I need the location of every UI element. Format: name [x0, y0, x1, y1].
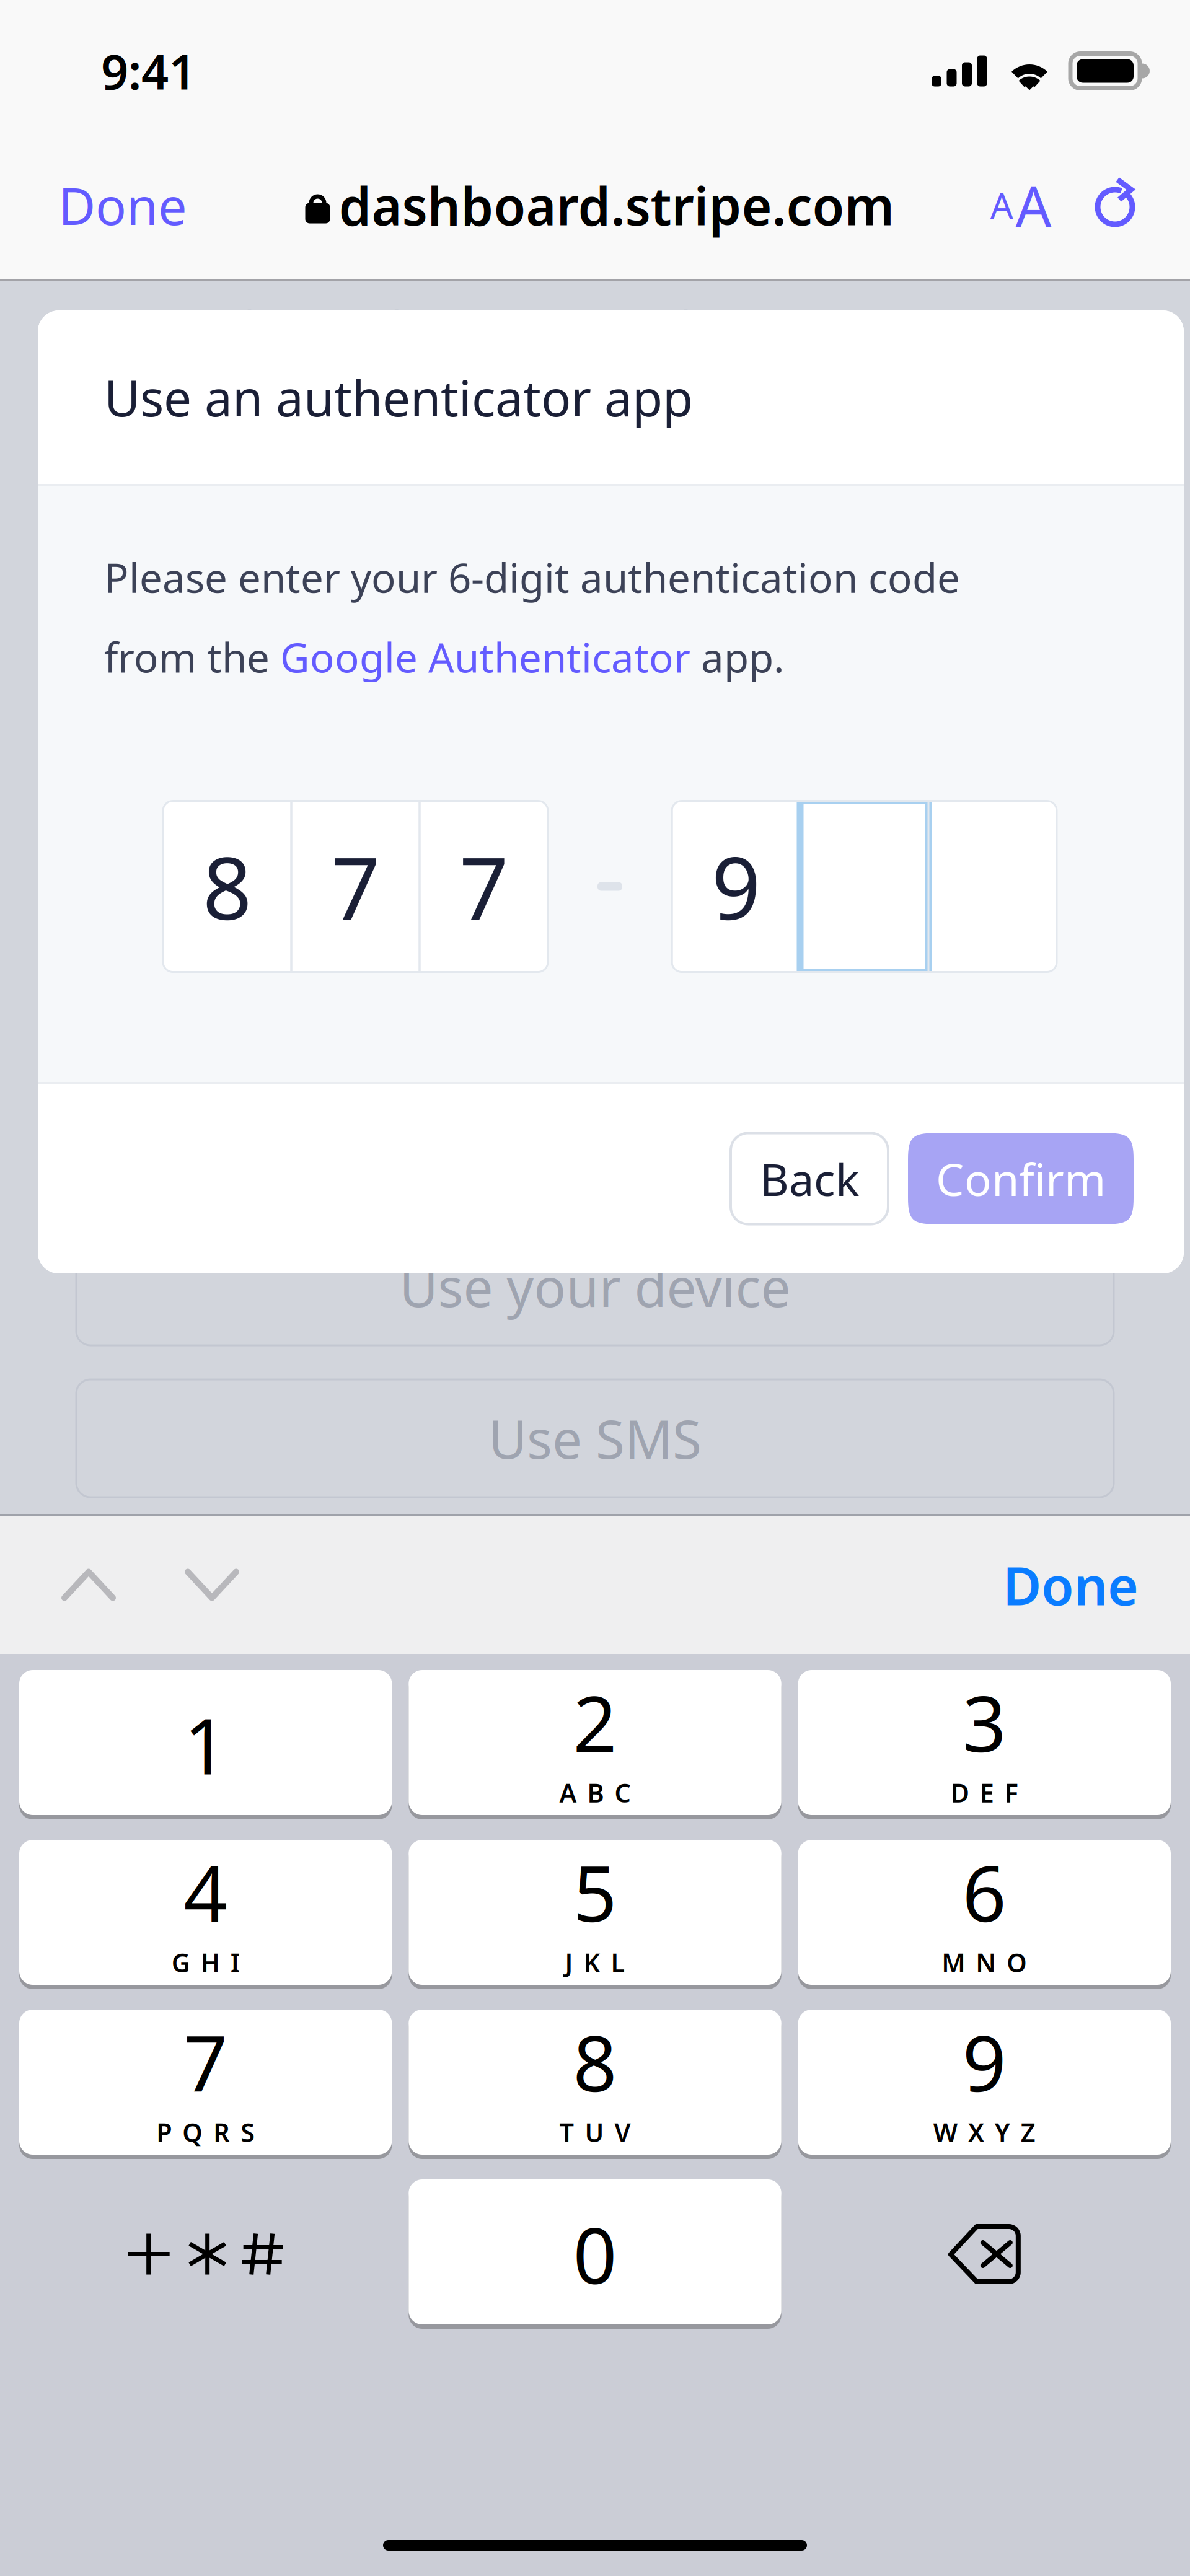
button[interactable]: Done — [50, 162, 196, 248]
staticText: Confirm — [936, 1149, 1106, 1208]
button[interactable]: Text size — [982, 168, 1060, 242]
staticText: J K L — [565, 1945, 625, 1979]
staticText: 9 — [962, 2011, 1006, 2113]
button[interactable]: 7 — [19, 2010, 392, 2159]
staticText: Use your device — [399, 1251, 791, 1322]
staticText: ith your device or an authenticator app. — [219, 298, 971, 352]
button[interactable]: Symbols — [19, 2179, 392, 2329]
button[interactable]: 4 — [19, 1840, 392, 1989]
staticText: A B C — [559, 1776, 631, 1810]
staticText: M N O — [942, 1945, 1027, 1979]
staticText: Done — [58, 171, 187, 239]
button[interactable]: Confirm — [908, 1133, 1134, 1224]
button[interactable]: 8 — [409, 2010, 781, 2159]
button[interactable]: 3 — [798, 1670, 1171, 1819]
staticText: D E F — [951, 1776, 1018, 1810]
button[interactable]: Done — [1003, 1541, 1139, 1628]
staticText: Done — [1003, 1550, 1139, 1620]
button[interactable]: 9 — [798, 2010, 1171, 2159]
staticText: A — [990, 181, 1013, 229]
staticText: 7 — [459, 829, 508, 943]
button[interactable]: 1 — [19, 1670, 392, 1819]
staticText: T U V — [559, 2115, 631, 2149]
staticText: 2 — [573, 1671, 617, 1773]
button[interactable]: Previous field — [61, 1541, 116, 1628]
staticText: 5 — [573, 1841, 617, 1943]
staticText: 0 — [573, 2203, 617, 2305]
staticText: Use SMS — [488, 1403, 702, 1473]
button[interactable]: 5 — [409, 1840, 781, 1989]
staticText: Back — [760, 1149, 859, 1208]
staticText: A — [1016, 168, 1051, 242]
button[interactable]: 6 — [798, 1840, 1171, 1989]
staticText: W X Y Z — [933, 2115, 1036, 2149]
staticText: 9:41 — [101, 39, 196, 103]
button[interactable]: Reload — [1082, 168, 1150, 242]
staticText: 1 — [184, 1694, 228, 1796]
button[interactable]: Delete — [798, 2179, 1171, 2329]
staticText: G H I — [171, 1945, 240, 1979]
staticText: P Q R S — [156, 2115, 255, 2149]
staticText: 4 — [184, 1841, 228, 1943]
staticText: 7 — [331, 829, 380, 943]
staticText: 8 — [203, 829, 252, 943]
button[interactable]: 2 — [409, 1670, 781, 1819]
staticText: 7 — [184, 2011, 228, 2113]
staticText: 3 — [962, 1671, 1006, 1773]
staticText: 6 — [962, 1841, 1006, 1943]
button[interactable]: 0 — [409, 2179, 781, 2329]
staticText: 8 — [573, 2011, 617, 2113]
staticText: Please enter your 6-digit authentication… — [104, 550, 960, 684]
button[interactable]: Next field — [185, 1541, 239, 1628]
staticText: dashboard.stripe.com — [339, 171, 895, 240]
staticText: Use an authenticator app — [104, 364, 693, 430]
button[interactable]: Back — [731, 1133, 888, 1224]
staticText: 9 — [712, 829, 760, 943]
